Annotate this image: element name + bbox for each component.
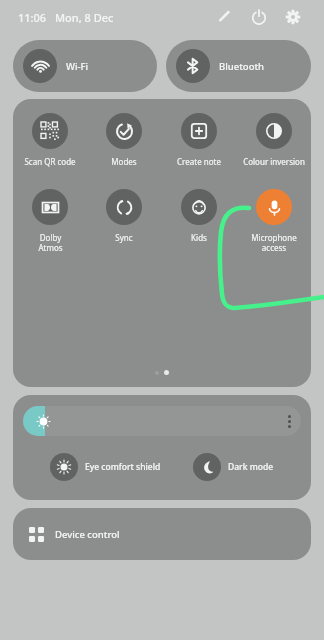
button[interactable]: Modes — [87, 111, 161, 169]
button[interactable]: Eye comfort shield — [46, 449, 165, 485]
button[interactable]: Device control — [13, 508, 311, 560]
staticText: Wi-Fi — [66, 60, 89, 73]
button[interactable]: Edit — [212, 4, 238, 30]
button[interactable]: Colour inversion — [236, 111, 311, 169]
button[interactable]: Power — [246, 4, 272, 30]
staticText: Eye comfort shield — [85, 461, 161, 473]
staticText: Dark mode — [228, 461, 274, 473]
button[interactable]: Dark mode — [189, 449, 278, 485]
staticText: Colour inversion — [243, 156, 305, 167]
staticText: Dolby Atmos — [38, 232, 63, 253]
button[interactable]: Brightness — [23, 406, 301, 436]
staticText: Microphone access — [251, 232, 297, 253]
staticText: Scan QR code — [24, 156, 76, 167]
button[interactable]: Wi-Fi — [13, 40, 157, 92]
button[interactable]: Dolby Atmos — [13, 187, 87, 255]
staticText: Create note — [177, 156, 221, 167]
button[interactable]: Create note — [161, 111, 236, 169]
staticText: Sync — [115, 232, 133, 243]
button[interactable]: Scan QR code — [13, 111, 87, 169]
staticText: Modes — [111, 156, 137, 167]
staticText: Device control — [55, 528, 120, 541]
button[interactable]: Microphone access — [236, 187, 311, 255]
staticText: Kids — [191, 232, 207, 243]
button[interactable]: More brightness options — [288, 415, 291, 428]
staticText: Mon, 8 Dec — [55, 10, 114, 25]
button[interactable]: Kids — [161, 187, 236, 245]
staticText: Bluetooth — [219, 60, 265, 73]
button[interactable]: Settings — [280, 4, 306, 30]
staticText: 11:06 — [18, 10, 47, 25]
button[interactable]: Bluetooth — [166, 40, 311, 92]
button[interactable]: Sync — [87, 187, 161, 245]
